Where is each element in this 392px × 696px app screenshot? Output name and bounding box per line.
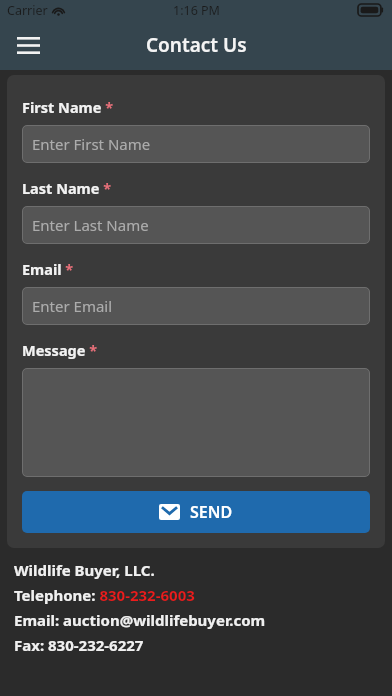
staticText: Enter First Name [32,134,151,154]
button[interactable]: Enter Email [22,287,370,325]
button[interactable]: Enter First Name [22,125,370,163]
staticText: Last Name * [22,178,112,198]
staticText: Email * [22,259,74,279]
staticText: Message * [22,340,98,360]
button[interactable]: Open navigation menu [8,25,48,65]
staticText: First Name * [22,97,114,117]
staticText: Enter Last Name [32,215,149,235]
staticText: Enter Email [32,296,113,316]
button[interactable]: Enter Last Name [22,206,370,244]
staticText: Fax: 830-232-6227 [14,635,144,655]
staticText: Contact Us [146,32,247,58]
staticText: 1:16 PM [173,2,220,19]
staticText: SEND [190,501,233,523]
staticText: Telephone: 830-232-6003 [14,585,195,605]
button[interactable] [22,368,370,477]
button[interactable]: SEND [22,491,370,533]
staticText: Email: auction@wildlifebuyer.com [14,610,266,630]
staticText: Wildlife Buyer, LLC. [14,560,155,580]
staticText: Carrier [7,2,48,19]
